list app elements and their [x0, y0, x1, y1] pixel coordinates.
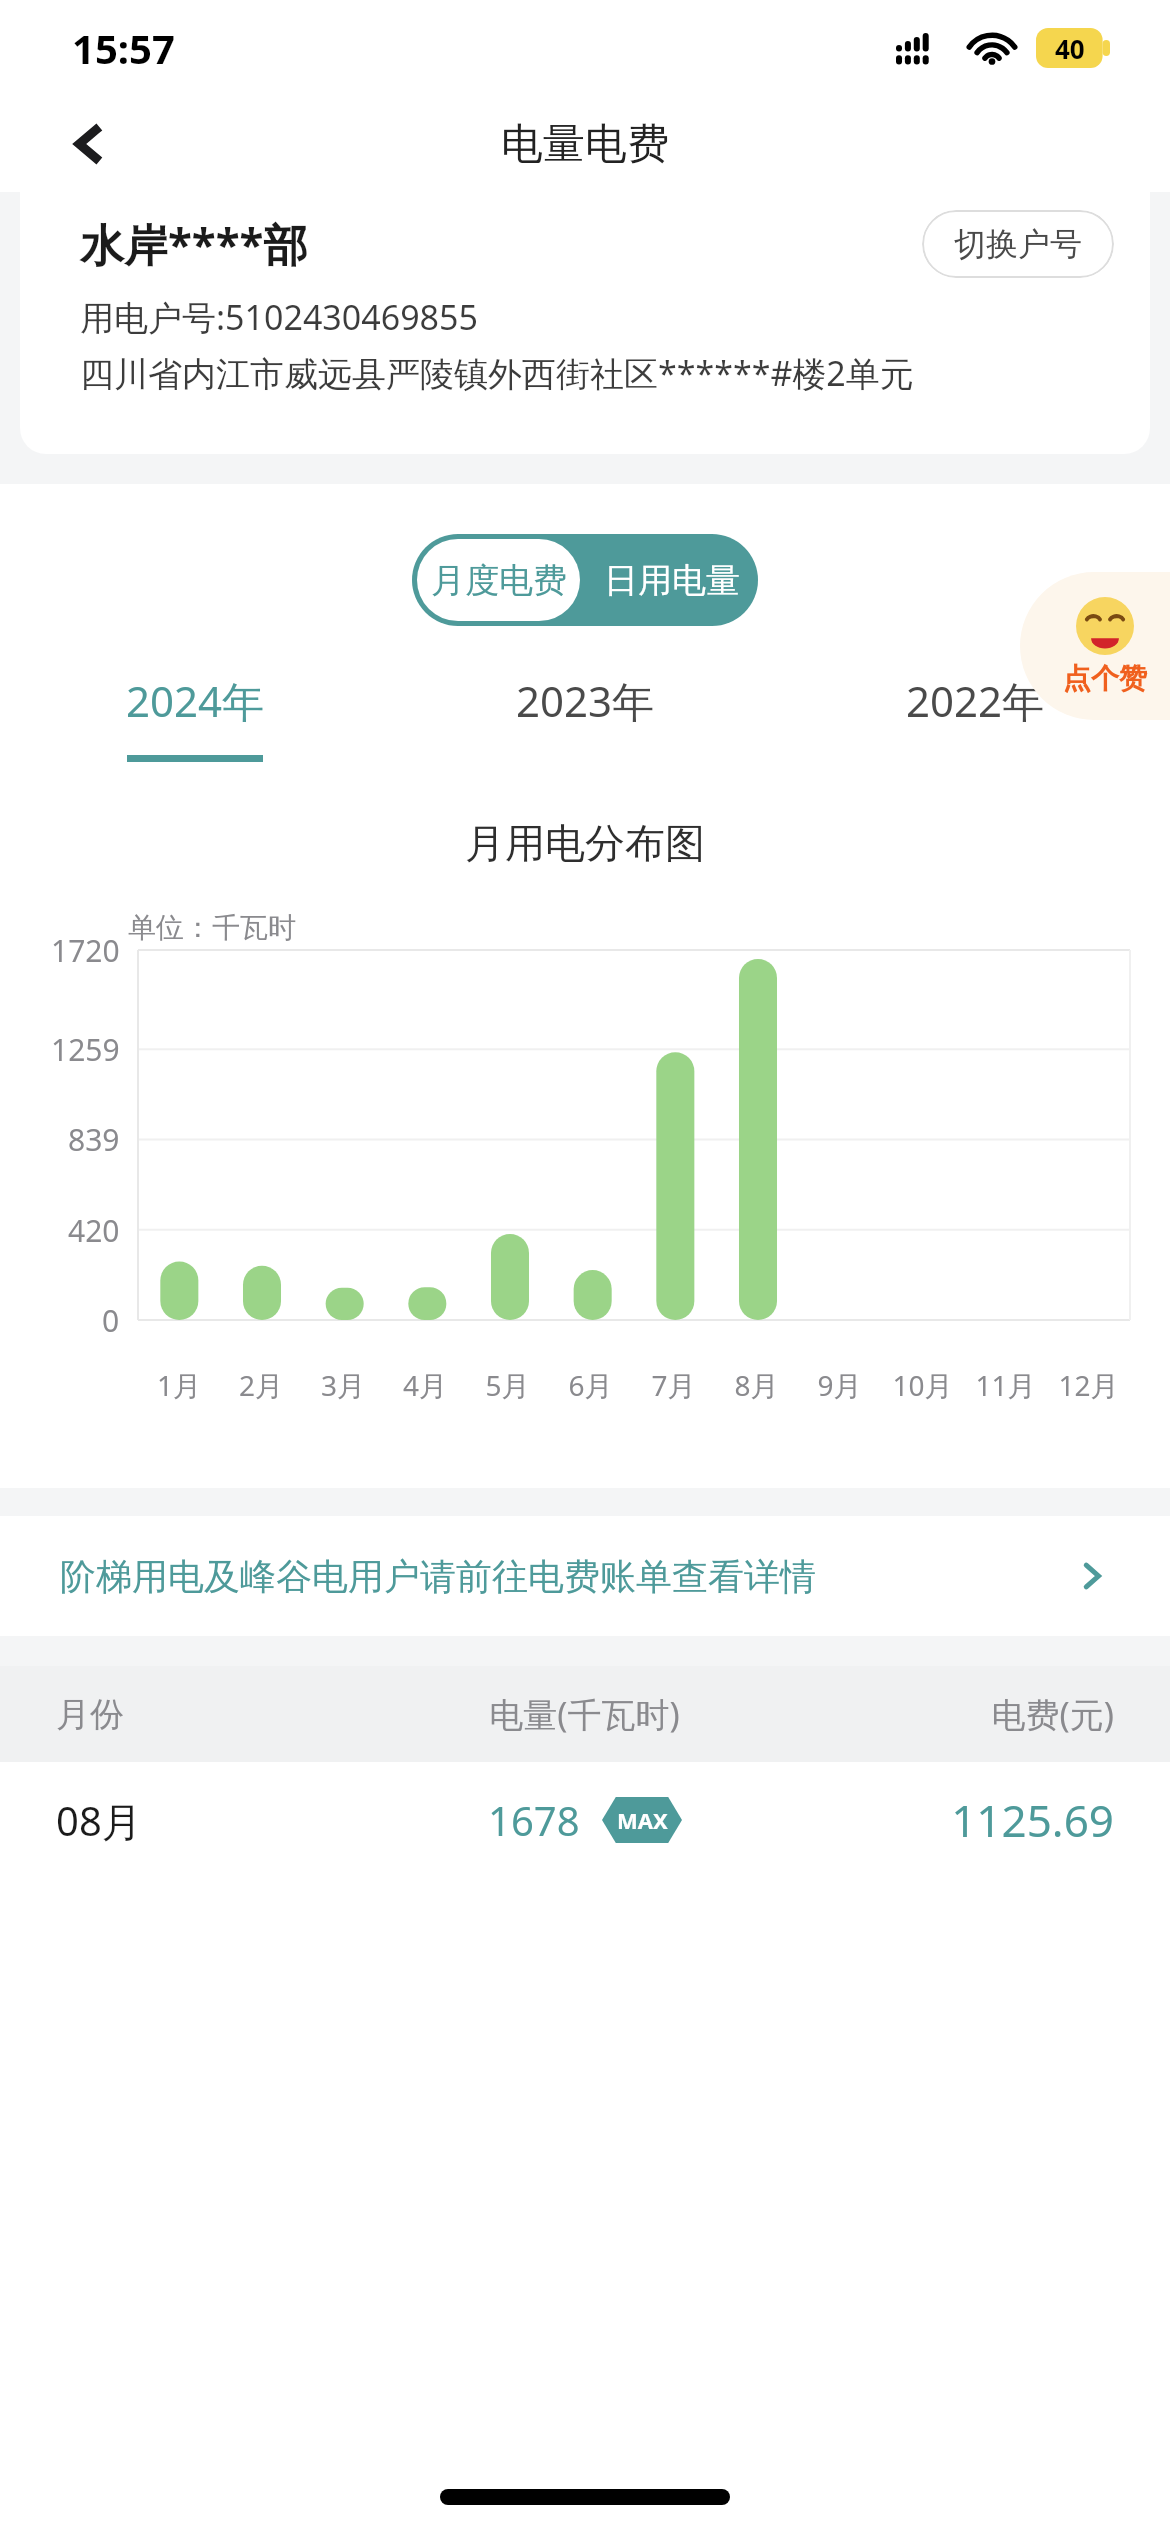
staticText: 2023年: [516, 672, 655, 729]
staticText: 2024年: [126, 672, 265, 729]
button[interactable]: 切换户号: [922, 210, 1114, 278]
staticText: MAX: [617, 1805, 668, 1835]
staticText: 839: [68, 1119, 120, 1160]
staticText: 四川省内江市威远县严陵镇外西街社区******#楼2单元: [80, 350, 914, 396]
staticText: 12月: [1047, 1366, 1130, 1404]
staticText: 切换户号: [954, 224, 1082, 264]
button[interactable]: 月度电费: [417, 539, 580, 621]
staticText: 月度电费: [431, 559, 567, 602]
staticText: 阶梯用电及峰谷电用户请前往电费账单查看详情: [60, 1554, 816, 1599]
button[interactable]: 08月: [0, 1762, 1170, 1878]
staticText: 8月: [715, 1366, 798, 1404]
staticText: 1678: [488, 1793, 580, 1847]
staticText: 电量电费: [501, 118, 669, 171]
staticText: 6月: [549, 1366, 632, 1404]
staticText: 用电户号:5102430469855: [80, 294, 478, 340]
staticText: 单位：千瓦时: [128, 910, 296, 945]
staticText: 2022年: [906, 672, 1045, 729]
staticText: 1259: [51, 1029, 120, 1070]
staticText: 40: [1055, 31, 1085, 66]
button[interactable]: 水岸****部: [20, 192, 1150, 454]
staticText: 电量(千瓦时): [386, 1691, 783, 1737]
staticText: 10月: [881, 1366, 964, 1404]
staticText: 0: [102, 1300, 120, 1341]
staticText: 7月: [632, 1366, 715, 1404]
staticText: 5月: [466, 1366, 549, 1404]
button[interactable]: 2022年: [780, 672, 1170, 762]
button[interactable]: 2023年: [390, 672, 780, 762]
staticText: 点个赞: [1063, 661, 1147, 696]
staticText: 月用电分布图: [0, 818, 1170, 868]
staticText: 月份: [56, 1693, 386, 1736]
staticText: 4月: [384, 1366, 466, 1404]
button[interactable]: Back: [40, 96, 136, 192]
staticText: 420: [68, 1210, 120, 1251]
staticText: 11月: [964, 1366, 1047, 1404]
staticText: 水岸****部: [80, 214, 308, 274]
staticText: 08月: [56, 1793, 386, 1848]
button[interactable]: 阶梯用电及峰谷电用户请前往电费账单查看详情: [0, 1516, 1170, 1636]
staticText: 1720: [51, 930, 120, 971]
staticText: 15:57: [72, 21, 175, 75]
staticText: 日用电量: [604, 559, 740, 602]
button[interactable]: 日用电量: [585, 534, 758, 626]
staticText: 电费(元): [783, 1691, 1114, 1737]
staticText: 1125.69: [783, 1790, 1114, 1850]
staticText: 3月: [302, 1366, 384, 1404]
staticText: 2月: [220, 1366, 302, 1404]
button[interactable]: 2024年: [0, 672, 390, 762]
staticText: 9月: [798, 1366, 881, 1404]
button[interactable]: 点个赞: [1020, 572, 1170, 720]
staticText: 1月: [138, 1366, 220, 1404]
